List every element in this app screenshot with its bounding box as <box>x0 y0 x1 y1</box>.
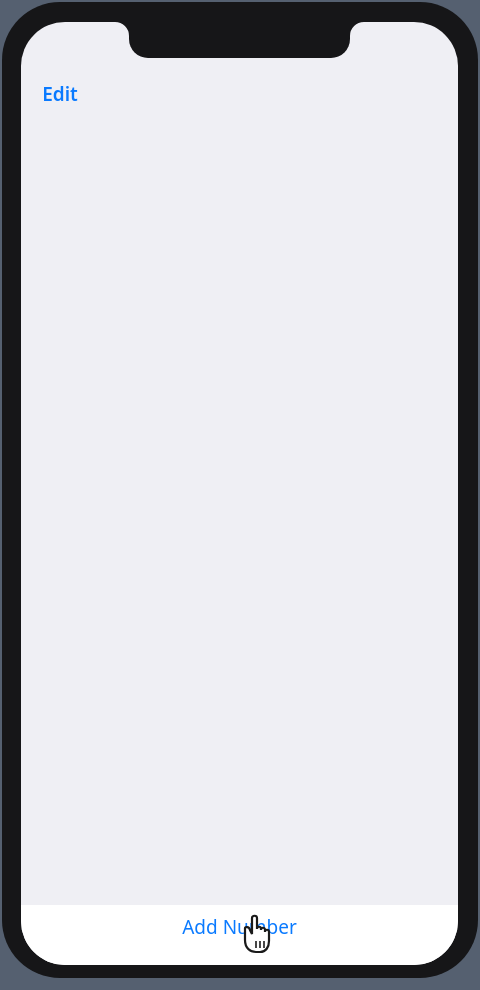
staticText: Edit <box>42 81 78 107</box>
button[interactable]: Edit <box>33 76 87 112</box>
staticText: Add Number <box>182 914 297 940</box>
button[interactable]: Add Number <box>21 905 458 965</box>
other: Notch <box>21 22 458 965</box>
